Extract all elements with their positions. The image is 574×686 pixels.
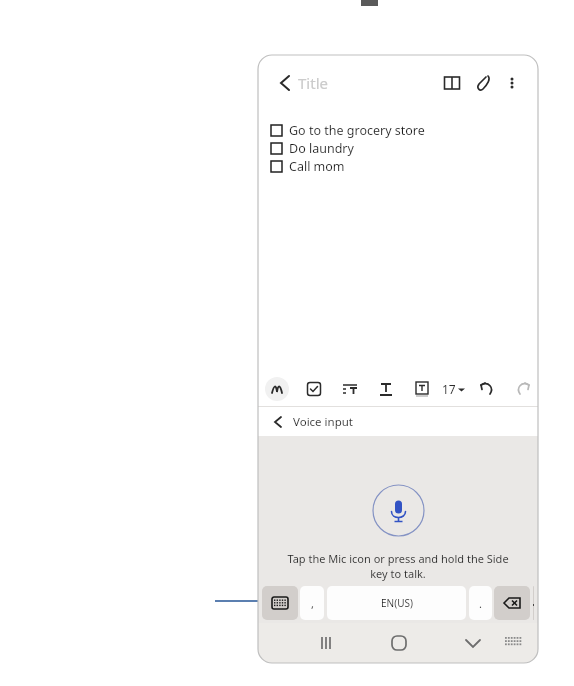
button[interactable]: Redo [511, 377, 535, 401]
button[interactable]: Do laundry [271, 139, 538, 157]
button[interactable]: Text box [410, 377, 434, 401]
button[interactable]: , [300, 586, 324, 620]
button[interactable]: Go to the grocery store [271, 121, 538, 139]
staticText: Tap the Mic icon or press and hold the S… [286, 551, 510, 581]
staticText: Voice input [293, 414, 353, 430]
button[interactable]: Recents [311, 628, 341, 658]
button[interactable]: Microphone [372, 484, 425, 537]
staticText: Do laundry [289, 140, 354, 157]
button[interactable]: Attach [470, 69, 498, 97]
button[interactable]: EN(US) [327, 586, 466, 620]
button[interactable]: Undo [475, 377, 499, 401]
button[interactable]: More options [500, 71, 524, 95]
button[interactable]: Back [270, 68, 300, 98]
button[interactable]: Text style [374, 377, 398, 401]
staticText: . [479, 596, 482, 611]
button[interactable]: Keyboard settings [500, 630, 526, 656]
button[interactable]: Keyboard [262, 586, 298, 620]
button[interactable]: Call mom [271, 157, 538, 175]
staticText: Call mom [289, 158, 345, 175]
button[interactable]: Enter [533, 586, 534, 620]
button[interactable]: 17 [442, 377, 465, 401]
button[interactable]: . [469, 586, 492, 620]
staticText: EN(US) [381, 596, 413, 610]
button[interactable]: Reading mode [438, 69, 466, 97]
staticText: Title [298, 73, 328, 93]
button[interactable]: Home [384, 628, 414, 658]
staticText: , [311, 596, 314, 611]
staticText: 17 [442, 381, 456, 397]
button[interactable]: Voice input [258, 407, 538, 436]
button[interactable]: Checklist [302, 377, 326, 401]
staticText: Go to the grocery store [289, 122, 425, 139]
button[interactable]: Hide keyboard [458, 628, 488, 658]
button[interactable]: Pen [265, 377, 289, 401]
button[interactable]: Backspace [494, 586, 530, 620]
button[interactable]: List [338, 377, 362, 401]
